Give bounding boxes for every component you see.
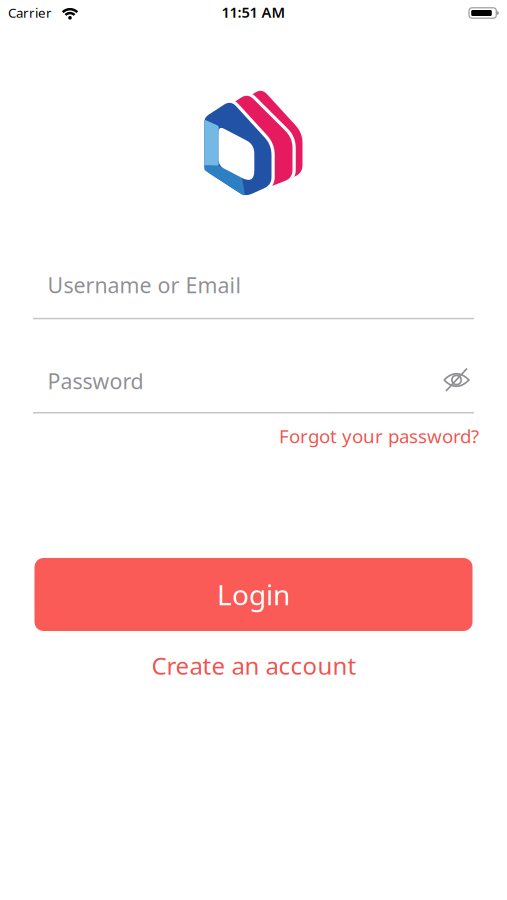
button[interactable]: Forgot your password? <box>39 424 479 448</box>
staticText: 11:51 AM <box>221 2 285 22</box>
button[interactable]: Password <box>33 355 474 407</box>
button[interactable]: Username or Email <box>33 259 474 311</box>
staticText: Create an account <box>151 650 356 681</box>
staticText: Carrier <box>8 4 52 21</box>
button[interactable]: Login <box>34 558 472 631</box>
button[interactable]: Create an account <box>151 650 356 681</box>
staticText: Login <box>217 576 290 613</box>
staticText: Forgot your password? <box>279 424 479 448</box>
staticText: Username or Email <box>47 271 241 299</box>
staticText: Password <box>47 367 143 395</box>
button[interactable]: Show password <box>434 358 478 402</box>
